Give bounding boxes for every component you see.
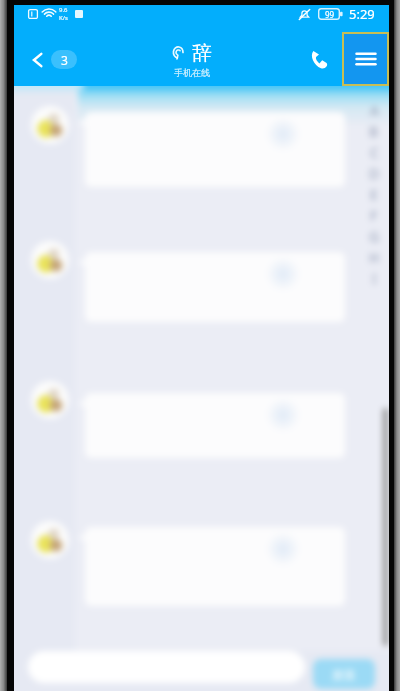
staticText: 99: [325, 9, 335, 20]
staticText: H: [369, 248, 380, 267]
staticText: E: [370, 185, 378, 204]
staticText: K/s: [59, 14, 68, 22]
staticText: 手机在线: [174, 67, 210, 78]
staticText: I: [372, 269, 377, 288]
button[interactable]: 3: [14, 37, 87, 82]
staticText: 3: [61, 52, 68, 68]
button[interactable]: Message input: [28, 651, 305, 683]
staticText: A: [370, 101, 379, 120]
staticText: F: [370, 206, 378, 225]
staticText: 5:29: [349, 5, 375, 23]
button[interactable]: Menu: [342, 32, 389, 86]
staticText: G: [369, 227, 380, 246]
staticText: C: [370, 143, 379, 162]
button[interactable]: Send: [313, 659, 375, 689]
staticText: 发送: [332, 667, 356, 682]
button[interactable]: Call: [300, 32, 338, 86]
staticText: 9.6: [59, 6, 68, 14]
staticText: D: [369, 164, 380, 183]
staticText: 辞: [192, 41, 212, 66]
staticText: B: [369, 122, 379, 141]
